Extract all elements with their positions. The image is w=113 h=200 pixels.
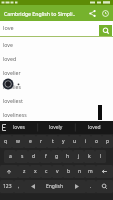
button[interactable]: English xyxy=(24,180,86,193)
staticText: lovely xyxy=(49,124,63,131)
button[interactable]: i xyxy=(80,135,91,148)
staticText: b xyxy=(67,168,71,175)
staticText: f xyxy=(45,153,47,160)
button[interactable]: loveliest xyxy=(0,93,113,107)
staticText: 123 xyxy=(3,183,12,190)
button[interactable]: u xyxy=(69,135,80,148)
staticText: loved xyxy=(3,55,17,62)
button[interactable]: d xyxy=(28,150,40,163)
staticText: w xyxy=(16,138,20,145)
button[interactable]: p xyxy=(102,135,113,148)
button[interactable]: v xyxy=(52,165,63,178)
button[interactable]: loved xyxy=(75,121,113,134)
button[interactable]: Shift xyxy=(0,165,18,178)
staticText: loveliest xyxy=(3,97,23,104)
staticText: loves xyxy=(13,124,25,131)
button[interactable]: love xyxy=(0,37,113,51)
button[interactable]: c xyxy=(41,165,52,178)
staticText: r xyxy=(40,138,43,145)
button[interactable]: x xyxy=(30,165,41,178)
staticText: v xyxy=(56,168,59,175)
staticText: loved xyxy=(88,124,101,131)
staticText: Cambridge English to Simpli.. xyxy=(4,10,86,17)
staticText: lovelies xyxy=(3,83,22,90)
staticText: u xyxy=(73,138,77,145)
button[interactable]: m xyxy=(85,165,96,178)
button[interactable]: loveliness xyxy=(0,107,113,121)
staticText: t xyxy=(52,138,54,145)
button[interactable]: f xyxy=(40,150,51,163)
staticText: q xyxy=(4,138,8,145)
staticText: l xyxy=(100,153,102,160)
button[interactable]: a xyxy=(4,150,16,163)
button[interactable]: loves xyxy=(0,121,37,134)
button[interactable]: Share xyxy=(86,7,99,20)
button[interactable]: Search xyxy=(99,25,112,37)
staticText: . xyxy=(90,183,92,190)
staticText: loveliness xyxy=(3,111,27,118)
button[interactable]: 123 xyxy=(0,180,14,193)
staticText: n xyxy=(78,168,82,175)
staticText: s xyxy=(21,153,24,160)
staticText: e xyxy=(29,138,32,145)
staticText: m xyxy=(88,168,93,175)
staticText: , xyxy=(18,183,20,190)
button[interactable]: History xyxy=(99,7,112,20)
staticText: p xyxy=(106,138,110,145)
staticText: g xyxy=(55,153,59,160)
button[interactable]: j xyxy=(73,150,84,163)
staticText: y xyxy=(62,138,65,145)
staticText: love xyxy=(3,41,13,48)
staticText: o xyxy=(95,138,99,145)
button[interactable]: h xyxy=(62,150,73,163)
button[interactable]: Search xyxy=(96,180,113,193)
staticText: x xyxy=(34,168,37,175)
button[interactable]: lovely xyxy=(37,121,75,134)
button[interactable]: r xyxy=(36,135,47,148)
button[interactable]: z xyxy=(18,165,30,178)
button[interactable]: k xyxy=(84,150,95,163)
button[interactable]: n xyxy=(74,165,85,178)
staticText: h xyxy=(66,153,70,160)
staticText: k xyxy=(88,153,91,160)
staticText: c xyxy=(45,168,48,175)
button[interactable]: q xyxy=(0,135,12,148)
staticText: j xyxy=(78,153,80,160)
button[interactable]: lovelier xyxy=(0,65,113,79)
button[interactable]: loved xyxy=(0,51,113,65)
staticText: English xyxy=(46,183,64,190)
staticText: lovelier xyxy=(3,69,21,76)
button[interactable]: g xyxy=(51,150,62,163)
staticText: love xyxy=(3,24,14,31)
staticText: a xyxy=(9,153,12,160)
staticText: i xyxy=(85,138,87,145)
button[interactable]: , xyxy=(14,180,24,193)
button[interactable]: y xyxy=(58,135,69,148)
button[interactable]: l xyxy=(95,150,106,163)
button[interactable]: o xyxy=(91,135,102,148)
button[interactable]: . xyxy=(86,180,96,193)
staticText: d xyxy=(32,153,36,160)
button[interactable]: Backspace xyxy=(96,165,113,178)
staticText: z xyxy=(23,168,26,175)
button[interactable]: t xyxy=(47,135,58,148)
button[interactable]: b xyxy=(63,165,74,178)
button[interactable]: lovelies xyxy=(0,79,113,93)
button[interactable]: w xyxy=(12,135,24,148)
button[interactable]: e xyxy=(24,135,36,148)
button[interactable]: s xyxy=(16,150,28,163)
